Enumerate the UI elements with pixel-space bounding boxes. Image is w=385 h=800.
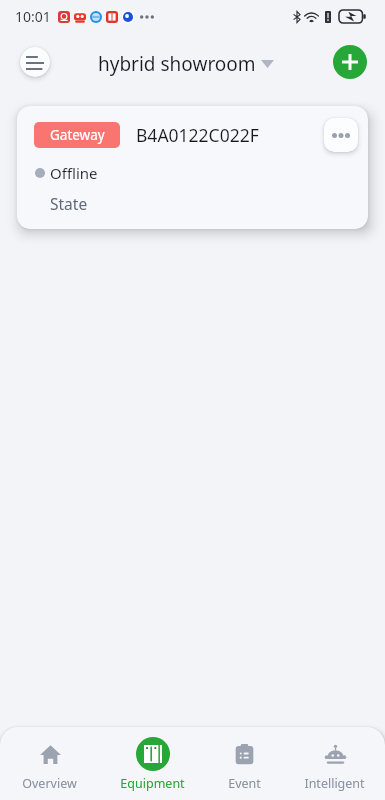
staticText: B4A0122C022F <box>136 123 259 147</box>
button[interactable]: Gateway <box>17 106 368 229</box>
staticText: Intelligent <box>304 775 365 792</box>
button[interactable]: hybrid showroom <box>98 51 274 77</box>
button[interactable]: Overview <box>22 729 77 800</box>
staticText: State <box>50 193 88 214</box>
staticText: hybrid showroom <box>98 51 256 77</box>
button[interactable]: More options <box>324 118 358 152</box>
button[interactable]: Menu <box>20 47 50 77</box>
button[interactable]: Intelligent <box>304 729 365 800</box>
staticText: Equipment <box>120 775 185 792</box>
button[interactable]: Event <box>227 729 261 800</box>
button[interactable]: Equipment <box>120 729 185 800</box>
staticText: 10:01 <box>15 7 51 26</box>
staticText: Gateway <box>50 126 105 144</box>
staticText: Overview <box>22 775 77 792</box>
staticText: Event <box>228 775 261 792</box>
button[interactable]: Add <box>333 45 367 79</box>
staticText: Offline <box>50 163 98 183</box>
